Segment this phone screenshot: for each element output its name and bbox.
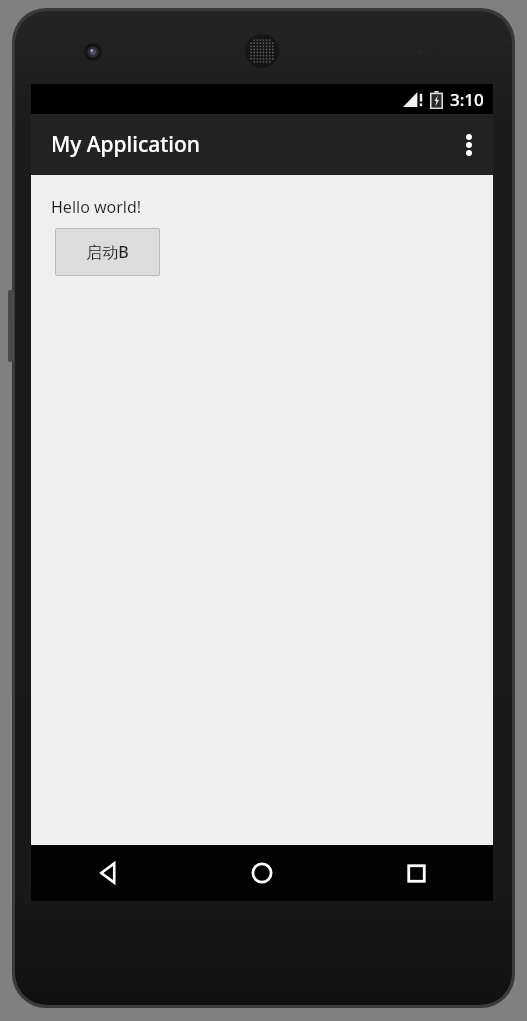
staticText: 启动B <box>86 241 129 263</box>
button[interactable]: Recent apps <box>339 845 493 901</box>
staticText: 3:10 <box>450 88 484 111</box>
staticText: Hello world! <box>51 196 142 218</box>
button[interactable]: 启动B <box>55 228 160 276</box>
button[interactable]: Back <box>31 845 185 901</box>
staticText: My Application <box>51 130 200 159</box>
button[interactable]: More options <box>445 121 493 169</box>
button[interactable]: Home <box>185 845 339 901</box>
